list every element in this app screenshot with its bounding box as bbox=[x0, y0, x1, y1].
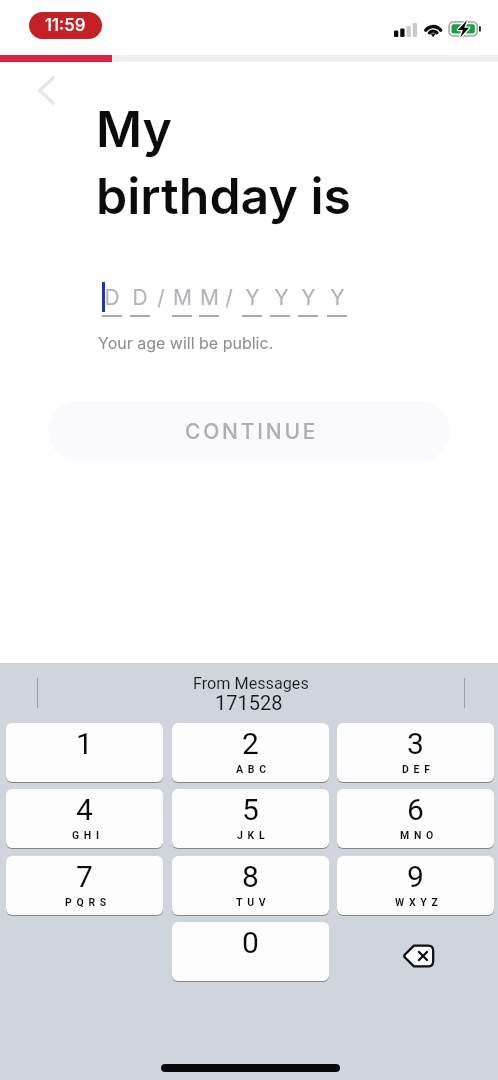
button[interactable]: Back bbox=[26, 70, 66, 110]
staticText: / bbox=[225, 285, 233, 310]
staticText: From Messages bbox=[193, 674, 309, 693]
button[interactable]: 2 bbox=[172, 723, 329, 782]
staticText: My birthday is bbox=[96, 99, 352, 226]
staticText: 7 bbox=[76, 859, 93, 894]
staticText: DEF bbox=[402, 763, 435, 775]
staticText: Y bbox=[274, 285, 289, 310]
staticText: 1 bbox=[76, 726, 93, 761]
button[interactable]: 8 bbox=[172, 856, 329, 915]
staticText: PQRS bbox=[65, 896, 111, 908]
staticText: WXYZ bbox=[395, 896, 443, 908]
staticText: JKL bbox=[237, 829, 270, 841]
button[interactable]: 9 bbox=[337, 856, 494, 915]
button[interactable]: 1 bbox=[6, 723, 163, 782]
staticText: D bbox=[104, 285, 120, 310]
staticText: Y bbox=[301, 285, 316, 310]
staticText: 8 bbox=[242, 859, 259, 894]
staticText: 5 bbox=[242, 792, 259, 827]
staticText: CONTINUE bbox=[185, 419, 319, 444]
staticText: Your age will be public. bbox=[98, 333, 274, 352]
staticText: 6 bbox=[407, 792, 424, 827]
staticText: 9 bbox=[407, 859, 424, 894]
staticText: GHI bbox=[72, 829, 104, 841]
button[interactable]: 5 bbox=[172, 789, 329, 848]
staticText: Y bbox=[330, 285, 345, 310]
staticText: D bbox=[132, 285, 148, 310]
staticText: 0 bbox=[242, 925, 259, 960]
staticText: 171528 bbox=[215, 691, 283, 714]
button[interactable]: 6 bbox=[337, 789, 494, 848]
button[interactable]: 3 bbox=[337, 723, 494, 782]
staticText: 4 bbox=[76, 792, 93, 827]
button[interactable]: 4 bbox=[6, 789, 163, 848]
staticText: MNO bbox=[400, 829, 438, 841]
staticText: M bbox=[173, 285, 192, 310]
staticText: Y bbox=[245, 285, 260, 310]
staticText: 2 bbox=[242, 726, 259, 761]
button[interactable]: 0 bbox=[172, 922, 329, 981]
staticText: 11:59 bbox=[45, 15, 86, 36]
button[interactable]: Backspace bbox=[337, 922, 494, 981]
staticText: M bbox=[200, 285, 219, 310]
button[interactable]: CONTINUE bbox=[48, 401, 450, 461]
staticText: TUV bbox=[236, 896, 271, 908]
staticText: / bbox=[157, 285, 165, 310]
staticText: ABC bbox=[236, 763, 271, 775]
staticText: 3 bbox=[407, 726, 424, 761]
button[interactable]: 7 bbox=[6, 856, 163, 915]
